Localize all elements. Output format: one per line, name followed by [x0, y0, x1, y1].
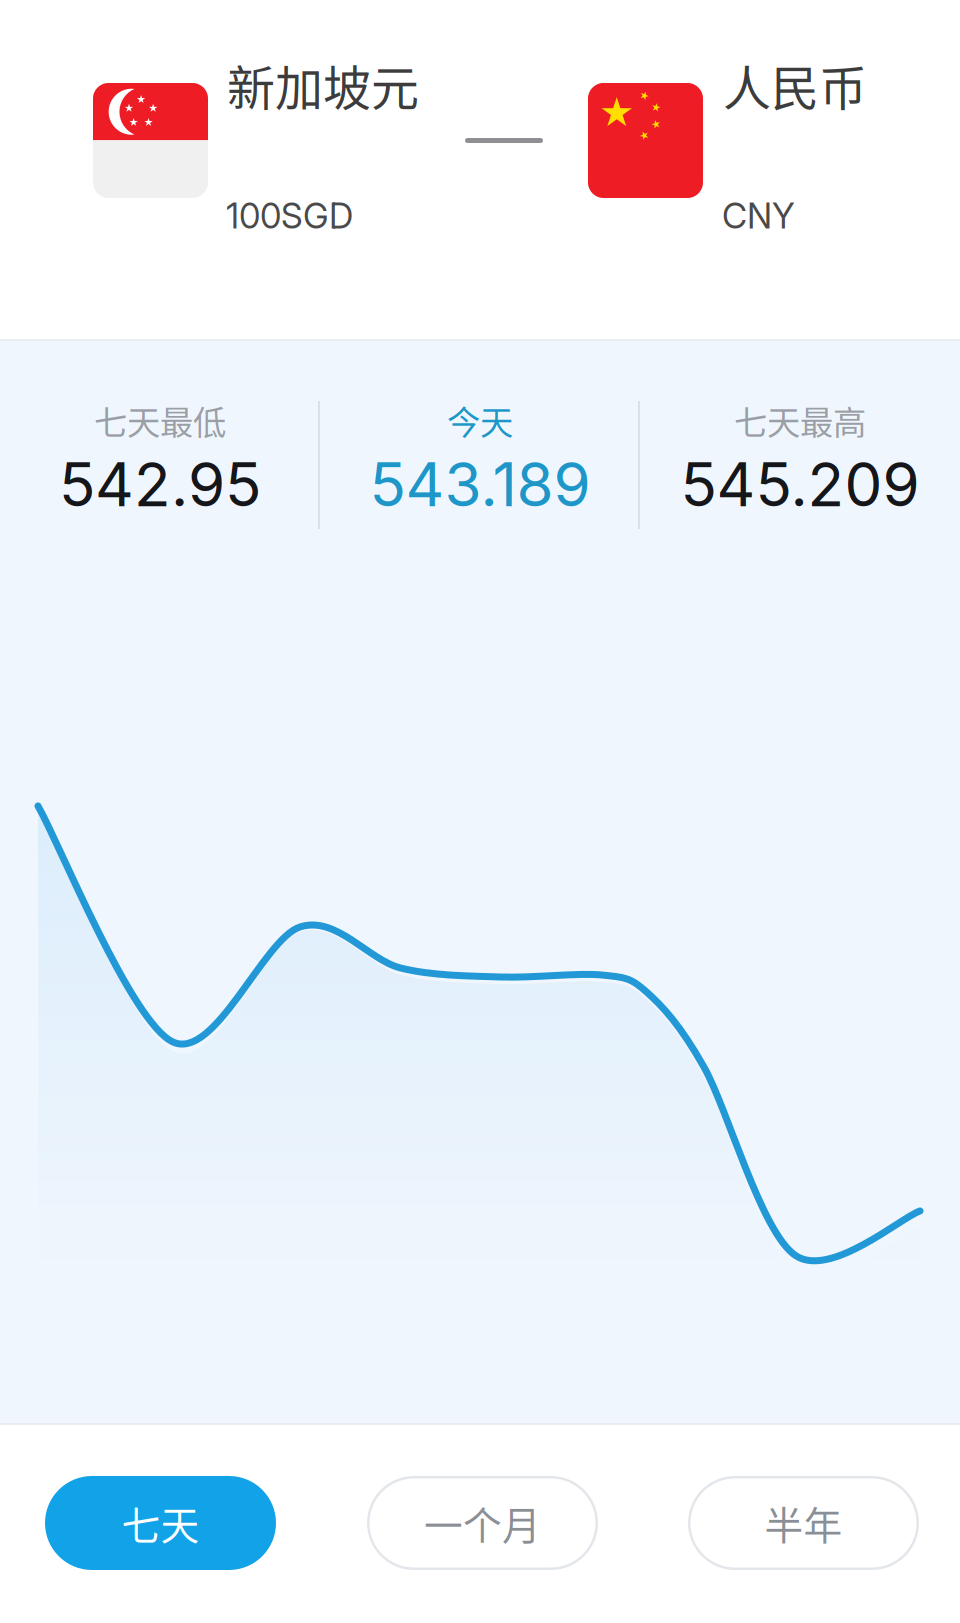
button[interactable]: 半年: [688, 1476, 919, 1570]
staticText: 一个月: [424, 1495, 541, 1551]
staticText: 545.209: [680, 448, 919, 521]
button[interactable]: 新加坡元: [93, 83, 423, 263]
button[interactable]: 七天: [45, 1476, 276, 1570]
staticText: 人民币: [723, 50, 867, 119]
staticText: CNY: [722, 195, 795, 237]
staticText: 542.95: [59, 448, 261, 521]
button[interactable]: 人民币: [588, 83, 878, 263]
staticText: 七天: [121, 1495, 199, 1551]
staticText: 半年: [764, 1495, 842, 1551]
staticText: 七天最高: [734, 396, 866, 444]
staticText: 七天最低: [94, 396, 226, 444]
button[interactable]: 一个月: [367, 1476, 598, 1570]
staticText: 新加坡元: [227, 50, 419, 119]
staticText: 100SGD: [226, 195, 353, 237]
staticText: 今天: [447, 396, 513, 444]
staticText: 543.189: [369, 448, 590, 521]
